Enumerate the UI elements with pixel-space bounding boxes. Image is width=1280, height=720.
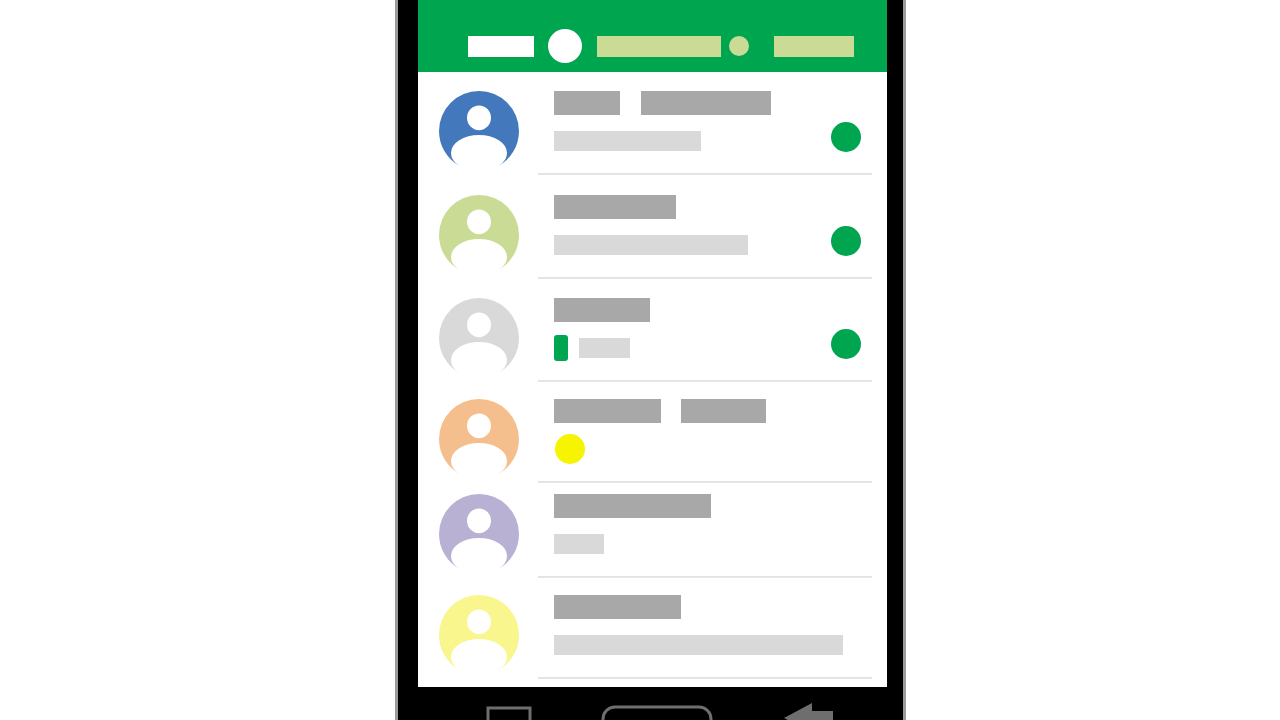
button[interactable]: Home — [596, 698, 718, 720]
button[interactable]: App bar — [418, 0, 887, 72]
button[interactable]: Conversation — [418, 180, 887, 280]
button[interactable]: Conversation — [418, 76, 887, 176]
button[interactable]: Conversation — [418, 384, 887, 484]
button[interactable]: Conversation — [418, 580, 887, 680]
button[interactable]: Recent apps — [480, 698, 540, 720]
button[interactable]: Conversation — [418, 283, 887, 383]
button[interactable]: Conversation — [418, 479, 887, 579]
button[interactable]: Back — [778, 698, 840, 720]
